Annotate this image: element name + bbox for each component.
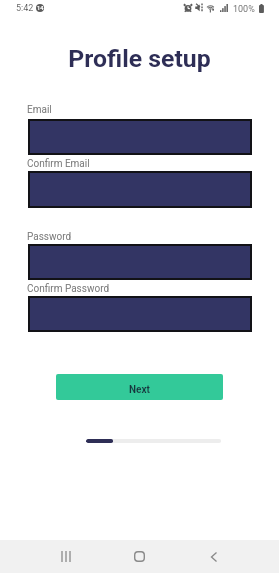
staticText: Email xyxy=(27,104,52,116)
button[interactable]: Back xyxy=(194,540,234,573)
staticText: Next xyxy=(129,384,150,396)
staticText: Password xyxy=(27,231,72,243)
button[interactable]: Recent apps xyxy=(46,540,86,573)
staticText: 5:42 xyxy=(16,3,34,14)
staticText: Confirm Password xyxy=(27,283,110,295)
staticText: Profile setup xyxy=(0,44,279,73)
staticText: Confirm Email xyxy=(27,158,90,170)
staticText: 100% xyxy=(233,4,255,15)
button[interactable]: Home xyxy=(119,540,159,573)
button[interactable]: Next xyxy=(56,374,223,400)
staticText: 14 xyxy=(37,5,44,11)
